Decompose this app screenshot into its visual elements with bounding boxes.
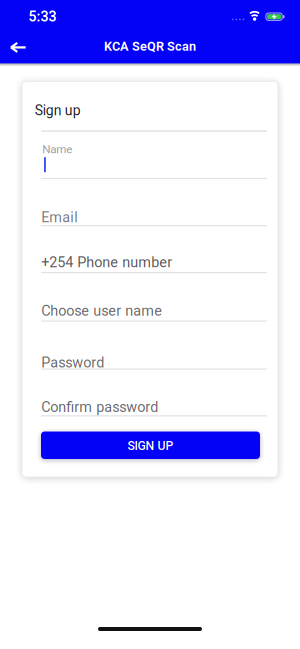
button[interactable]: SIGN UP: [41, 431, 260, 459]
staticText: KCA SeQR Scan: [104, 39, 196, 54]
staticText: Choose user name: [41, 302, 162, 319]
staticText: 5:33: [28, 8, 56, 25]
staticText: Sign up: [35, 102, 81, 119]
button[interactable]: Back: [0, 31, 38, 64]
staticText: Email: [41, 209, 78, 226]
staticText: +254 Phone number: [41, 254, 172, 271]
staticText: SIGN UP: [127, 439, 173, 453]
staticText: Confirm password: [41, 399, 158, 415]
staticText: Name: [42, 142, 72, 156]
staticText: Password: [41, 354, 104, 371]
